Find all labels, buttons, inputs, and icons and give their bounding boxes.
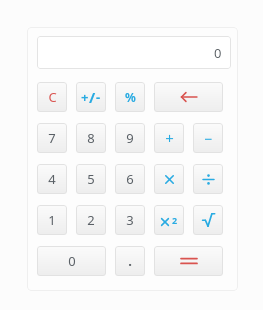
button[interactable]: . (115, 246, 145, 276)
staticText: 5 (87, 170, 95, 188)
button[interactable]: Multiply (154, 164, 184, 194)
button[interactable]: Divide (193, 164, 223, 194)
staticText: 9 (126, 129, 134, 147)
button[interactable]: 0 (37, 246, 106, 276)
button[interactable]: 3 (115, 205, 145, 235)
staticText: 2 (87, 211, 95, 229)
button[interactable]: 5 (76, 164, 106, 194)
staticText: C (48, 88, 57, 106)
button[interactable]: 9 (115, 123, 145, 153)
staticText: 8 (87, 129, 95, 147)
staticText: − (204, 129, 213, 148)
button[interactable]: Square root (193, 205, 223, 235)
staticText: % (125, 89, 136, 105)
staticText: + (165, 128, 174, 148)
staticText: 2 (172, 214, 178, 226)
staticText: 0 (214, 44, 222, 62)
staticText: 7 (48, 129, 56, 147)
staticText: 3 (126, 211, 134, 229)
staticText: / (89, 87, 96, 107)
button[interactable]: % (115, 82, 145, 112)
staticText: - (96, 88, 101, 106)
staticText: 4 (48, 170, 56, 188)
button[interactable]: Equals (154, 246, 223, 276)
staticText: 1 (48, 211, 56, 229)
staticText: . (128, 252, 132, 270)
staticText: + (81, 88, 89, 106)
button[interactable]: + (154, 123, 184, 153)
button[interactable]: 0 (37, 36, 231, 69)
button[interactable]: 1 (37, 205, 67, 235)
button[interactable]: 7 (37, 123, 67, 153)
button[interactable]: 6 (115, 164, 145, 194)
button[interactable]: 4 (37, 164, 67, 194)
staticText: 0 (68, 252, 76, 270)
button[interactable]: Backspace (154, 82, 223, 112)
button[interactable]: 2 (76, 205, 106, 235)
staticText: 6 (126, 170, 134, 188)
button[interactable]: Plus minus (76, 82, 106, 112)
button[interactable]: C (37, 82, 67, 112)
button[interactable]: 8 (76, 123, 106, 153)
button[interactable]: Square (154, 205, 184, 235)
button[interactable]: − (193, 123, 223, 153)
